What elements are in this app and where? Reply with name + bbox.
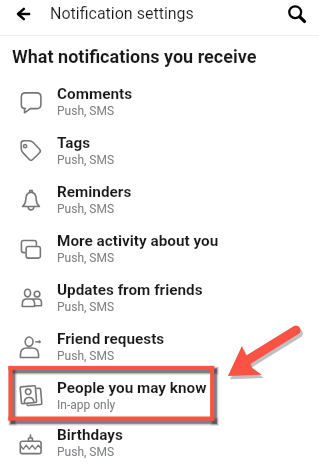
staticText: Tags: [57, 134, 91, 152]
staticText: What notifications you receive: [12, 46, 257, 67]
staticText: Notification settings: [50, 4, 194, 23]
button[interactable]: Reminders: [0, 175, 319, 224]
button[interactable]: Friend requests: [0, 322, 319, 371]
staticText: Push, SMS: [57, 445, 115, 459]
staticText: More activity about you: [57, 232, 219, 250]
staticText: Push, SMS: [57, 349, 115, 363]
button[interactable]: People you may know: [0, 371, 319, 420]
staticText: Reminders: [57, 183, 132, 201]
button[interactable]: Comments: [0, 77, 319, 126]
button[interactable]: Search: [280, 0, 314, 27]
staticText: Birthdays: [57, 426, 123, 444]
staticText: Updates from friends: [57, 281, 203, 299]
staticText: Push, SMS: [57, 202, 115, 216]
button[interactable]: Updates from friends: [0, 273, 319, 322]
staticText: People you may know: [57, 379, 207, 397]
button[interactable]: Tags: [0, 126, 319, 175]
staticText: Push, SMS: [57, 153, 115, 167]
button[interactable]: More activity about you: [0, 224, 319, 273]
button[interactable]: Birthdays: [0, 420, 319, 465]
staticText: Comments: [57, 85, 133, 103]
button[interactable]: Back: [0, 0, 31, 27]
staticText: In-app only: [57, 398, 116, 412]
staticText: Push, SMS: [57, 104, 115, 118]
staticText: Push, SMS: [57, 300, 115, 314]
staticText: Friend requests: [57, 330, 165, 348]
staticText: Push, SMS: [57, 251, 115, 265]
